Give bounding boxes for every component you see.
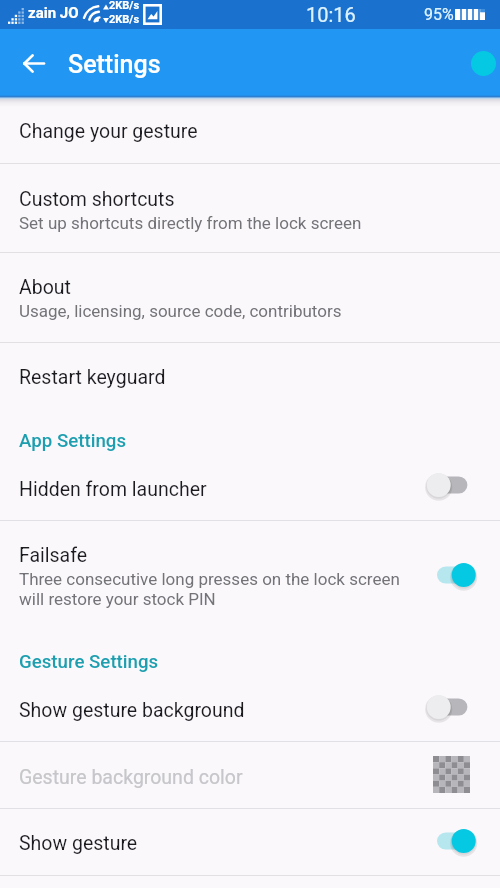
button[interactable] bbox=[0, 342, 500, 409]
button[interactable] bbox=[0, 252, 500, 342]
staticText: Gesture background color bbox=[19, 766, 243, 789]
button[interactable] bbox=[0, 808, 500, 875]
staticText: Settings bbox=[68, 50, 161, 79]
staticText: Show gesture background bbox=[19, 699, 245, 722]
staticText: Set up shortcuts directly from the lock … bbox=[19, 213, 362, 233]
staticText: Hidden from launcher bbox=[19, 478, 207, 501]
button[interactable]: Off bbox=[420, 692, 478, 722]
staticText: Change your gesture bbox=[19, 120, 198, 143]
staticText: Show gesture bbox=[19, 832, 138, 855]
staticText: Failsafe bbox=[19, 544, 88, 567]
button[interactable] bbox=[0, 520, 500, 630]
staticText: 2KB/s bbox=[109, 13, 140, 26]
button[interactable] bbox=[0, 741, 500, 808]
staticText: Gesture Settings bbox=[19, 651, 159, 673]
button[interactable]: Off bbox=[420, 470, 478, 500]
staticText: Restart keyguard bbox=[19, 366, 166, 389]
button[interactable] bbox=[0, 163, 500, 252]
button[interactable]: Navigate up bbox=[12, 41, 56, 85]
staticText: App Settings bbox=[19, 430, 127, 452]
staticText: Custom shortcuts bbox=[19, 188, 175, 211]
button[interactable]: Accent colour bbox=[471, 51, 496, 76]
button[interactable] bbox=[0, 465, 500, 520]
staticText: About bbox=[19, 276, 71, 299]
button[interactable]: On bbox=[420, 560, 478, 590]
staticText: 2KB/s bbox=[109, 0, 140, 12]
staticText: zain JO bbox=[28, 4, 79, 22]
staticText: Usage, licensing, source code, contribut… bbox=[19, 301, 342, 321]
staticText: Three consecutive long presses on the lo… bbox=[19, 569, 401, 609]
button[interactable] bbox=[0, 98, 500, 163]
staticText: 95% bbox=[424, 5, 454, 24]
button[interactable]: On bbox=[420, 826, 478, 856]
staticText: 10:16 bbox=[306, 3, 356, 26]
button[interactable] bbox=[0, 686, 500, 741]
